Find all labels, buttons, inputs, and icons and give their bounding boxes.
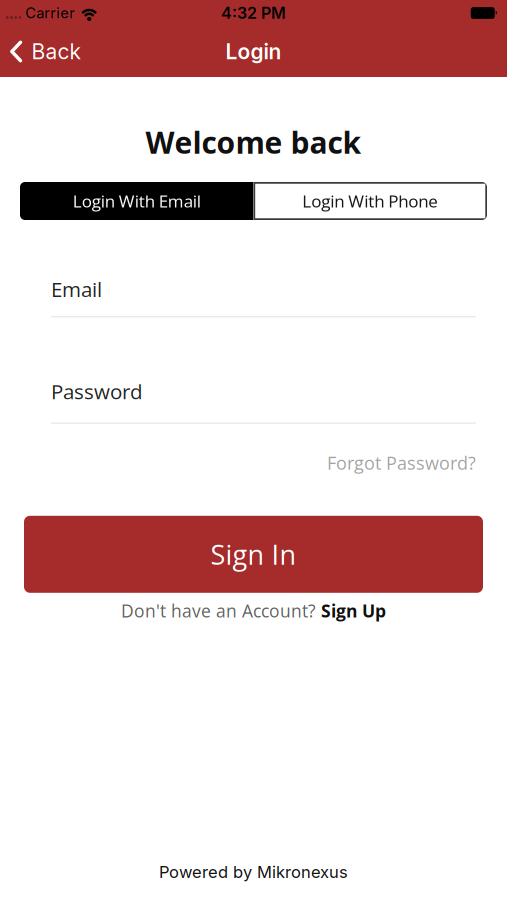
- staticText: Sign Up: [321, 599, 386, 623]
- button[interactable]: Sign Up: [321, 599, 386, 623]
- staticText: Email: [51, 275, 102, 303]
- staticText: Password: [51, 377, 143, 405]
- button[interactable]: Login With Phone: [253, 182, 487, 220]
- staticText: Login With Email: [73, 189, 201, 213]
- staticText: Powered by Mikronexus: [159, 862, 348, 882]
- staticText: Login With Phone: [302, 189, 438, 213]
- staticText: Back: [31, 39, 80, 64]
- staticText: Don't have an Account?: [121, 599, 316, 623]
- staticText: Forgot Password?: [327, 450, 476, 475]
- staticText: Welcome back: [145, 122, 361, 162]
- staticText: Login: [225, 39, 281, 64]
- button[interactable]: Forgot Password?: [327, 450, 476, 476]
- staticText: 4:32 PM: [221, 3, 286, 23]
- button[interactable]: Password: [51, 377, 476, 424]
- staticText: Sign In: [210, 536, 296, 573]
- button[interactable]: Back: [0, 39, 80, 64]
- button[interactable]: Sign In: [24, 516, 483, 593]
- staticText: Carrier: [25, 4, 75, 22]
- button[interactable]: Login With Email: [20, 182, 253, 220]
- button[interactable]: Email: [51, 275, 476, 317]
